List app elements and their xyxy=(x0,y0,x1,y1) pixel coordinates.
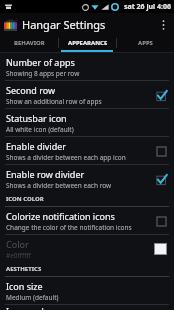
staticText: Enable row divider xyxy=(6,168,85,180)
button[interactable]: Number of apps xyxy=(0,53,174,80)
button[interactable]: Icon pack xyxy=(0,305,174,310)
staticText: ICON COLOR xyxy=(6,195,44,203)
staticText: Change the color of the notification ico… xyxy=(6,223,132,232)
button[interactable]: Toggle, unchecked xyxy=(154,214,168,228)
staticText: AESTHETICS xyxy=(6,265,42,273)
button[interactable]: Toggle, checked xyxy=(154,88,168,102)
staticText: Statusbar icon xyxy=(6,112,67,124)
button[interactable]: More options xyxy=(156,13,170,36)
staticText: sat 26 jul 4:06 xyxy=(124,2,171,12)
button[interactable]: Icon size xyxy=(0,277,174,304)
staticText: Colorize notification icons xyxy=(6,210,115,222)
staticText: Hangar Settings xyxy=(22,17,156,32)
button[interactable]: Toggle, checked xyxy=(154,172,168,186)
button[interactable]: Color xyxy=(0,235,174,262)
staticText: Shows a divider between each app icon xyxy=(6,153,126,162)
staticText: All white icon (default) xyxy=(6,125,74,134)
button[interactable]: Enable divider xyxy=(0,137,174,164)
staticText: Second row xyxy=(6,84,56,96)
staticText: Enable divider xyxy=(6,140,66,152)
staticText: #e0ffffff xyxy=(6,251,31,260)
staticText: Color xyxy=(6,238,29,250)
staticText: Icon pack xyxy=(6,305,47,310)
button[interactable]: Toggle, unchecked xyxy=(154,144,168,158)
button[interactable]: Pick color xyxy=(153,242,168,255)
button[interactable]: APPEARANCE xyxy=(59,36,116,50)
staticText: Number of apps xyxy=(6,56,75,68)
button[interactable]: Second row xyxy=(0,81,174,108)
staticText: APPS xyxy=(138,39,153,47)
staticText: Showing 8 apps per row xyxy=(6,69,80,78)
staticText: Medium (default) xyxy=(6,293,59,302)
button[interactable]: Enable row divider xyxy=(0,165,174,192)
staticText: Show an additional row of apps xyxy=(6,97,102,106)
staticText: Icon size xyxy=(6,280,43,292)
staticText: BEHAVIOR xyxy=(14,39,45,47)
button[interactable]: BEHAVIOR xyxy=(0,36,58,50)
staticText: APPEARANCE xyxy=(68,39,108,47)
button[interactable]: APPS xyxy=(117,36,174,50)
button[interactable]: Statusbar icon xyxy=(0,109,174,136)
button[interactable]: Colorize notification icons xyxy=(0,207,174,234)
staticText: Shows a divider between each row xyxy=(6,181,112,190)
